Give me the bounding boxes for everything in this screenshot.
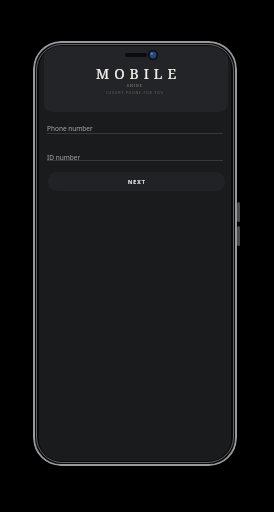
staticText: MOBILE xyxy=(96,64,182,83)
staticText: NEXT xyxy=(128,178,146,185)
button[interactable]: ID number xyxy=(47,153,224,165)
staticText: Phone number xyxy=(47,124,93,133)
button[interactable]: Phone number xyxy=(47,124,224,136)
button[interactable]: NEXT xyxy=(48,172,225,191)
staticText: LUXURY PHONE FOR YOU xyxy=(106,90,164,95)
staticText: SHINE xyxy=(127,83,143,88)
staticText: ID number xyxy=(47,153,81,162)
